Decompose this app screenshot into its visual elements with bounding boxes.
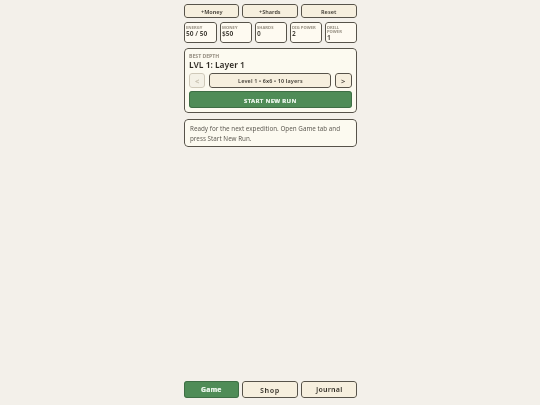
button[interactable]: Next level <box>335 73 352 88</box>
staticText: Ready for the next expedition. Open Game… <box>190 124 353 142</box>
staticText: +Shards <box>259 8 281 15</box>
staticText: BEST DEPTH <box>189 52 220 59</box>
staticText: SHARDS <box>257 25 274 31</box>
staticText: POWER <box>327 29 342 35</box>
staticText: Journal <box>316 385 343 395</box>
button[interactable]: Game <box>184 381 239 398</box>
staticText: 1 <box>327 33 331 42</box>
staticText: Level 1 • 6x6 • 10 layers <box>238 77 303 84</box>
button[interactable]: +Money <box>184 4 239 18</box>
staticText: > <box>341 76 346 86</box>
staticText: < <box>195 76 200 86</box>
staticText: DRILL <box>327 25 340 31</box>
staticText: START NEW RUN <box>244 97 297 105</box>
staticText: LVL 1: Layer 1 <box>189 59 245 70</box>
staticText: 2 <box>292 29 296 38</box>
staticText: MONEY <box>222 25 238 31</box>
button[interactable]: START NEW RUN <box>189 91 352 108</box>
staticText: Game <box>201 385 222 394</box>
staticText: Reset <box>321 8 337 15</box>
button[interactable]: Previous level <box>189 73 205 88</box>
staticText: DIG POWER <box>292 25 316 31</box>
button[interactable]: Level 1 • 6x6 • 10 layers <box>209 73 331 88</box>
staticText: +Money <box>201 8 223 15</box>
staticText: Shop <box>260 385 280 395</box>
staticText: $50 <box>222 29 234 38</box>
button[interactable]: Shop <box>242 381 298 398</box>
staticText: 0 <box>257 29 261 38</box>
staticText: ENERGY <box>186 25 203 31</box>
button[interactable]: Journal <box>301 381 357 398</box>
staticText: 50 / 50 <box>186 29 208 38</box>
button[interactable]: Reset <box>301 4 357 18</box>
button[interactable]: +Shards <box>242 4 298 18</box>
